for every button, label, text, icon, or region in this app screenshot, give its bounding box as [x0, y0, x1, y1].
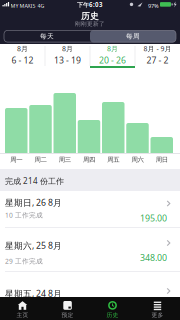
staticText: 8月: [17, 44, 28, 53]
staticText: 刚刚更新了: [75, 20, 105, 28]
button[interactable]: 星期日, 26 8月: [0, 191, 180, 228]
staticText: 预定: [61, 311, 73, 319]
staticText: MY MAXIS 4G: [10, 2, 44, 9]
button[interactable]: 8月: [0, 44, 45, 66]
button[interactable]: 8月: [90, 44, 135, 66]
staticText: 星期日, 26 8月: [5, 196, 62, 208]
staticText: 周二: [34, 155, 46, 164]
staticText: 348.00: [140, 251, 167, 263]
staticText: 历史: [106, 311, 118, 319]
staticText: 星期五, 24 8月: [5, 287, 62, 299]
staticText: 29 工作完成: [5, 256, 43, 266]
button[interactable]: 星期五, 24 8月: [0, 272, 180, 297]
staticText: 下午6:03: [77, 0, 103, 9]
staticText: 13 - 19: [54, 54, 81, 66]
button[interactable]: 8月: [45, 44, 90, 66]
staticText: 完成 214 份工作: [5, 175, 64, 186]
button[interactable]: 星期六, 25 8月: [0, 228, 180, 272]
staticText: 8月 - 9月: [143, 44, 171, 53]
button[interactable]: 更多: [135, 297, 180, 320]
button[interactable]: 8月 - 9月: [135, 44, 180, 66]
button[interactable]: 预定: [45, 297, 90, 320]
staticText: 周日: [156, 155, 168, 164]
button[interactable]: 主页: [0, 297, 45, 320]
staticText: 主页: [16, 311, 28, 319]
button[interactable]: 每天: [4, 30, 90, 42]
staticText: 周五: [107, 155, 119, 164]
staticText: 每天: [40, 32, 54, 40]
staticText: 6 - 12: [11, 54, 33, 66]
staticText: 97%: [148, 2, 159, 10]
staticText: 195.00: [140, 212, 167, 224]
staticText: 历史: [81, 10, 99, 21]
staticText: 10 工作完成: [5, 210, 43, 220]
staticText: 27 - 2: [146, 54, 168, 66]
staticText: 8月: [62, 44, 73, 53]
staticText: 20 - 26: [99, 54, 126, 66]
staticText: 周六: [131, 155, 143, 164]
staticText: 周一: [10, 155, 22, 164]
staticText: 星期六, 25 8月: [5, 239, 62, 251]
staticText: 8月: [107, 44, 118, 53]
button[interactable]: 历史: [90, 297, 135, 320]
staticText: 每周: [126, 32, 140, 40]
staticText: 周四: [83, 155, 95, 164]
staticText: 周三: [59, 155, 71, 164]
staticText: 更多: [151, 311, 163, 319]
button[interactable]: 每周: [90, 30, 176, 42]
